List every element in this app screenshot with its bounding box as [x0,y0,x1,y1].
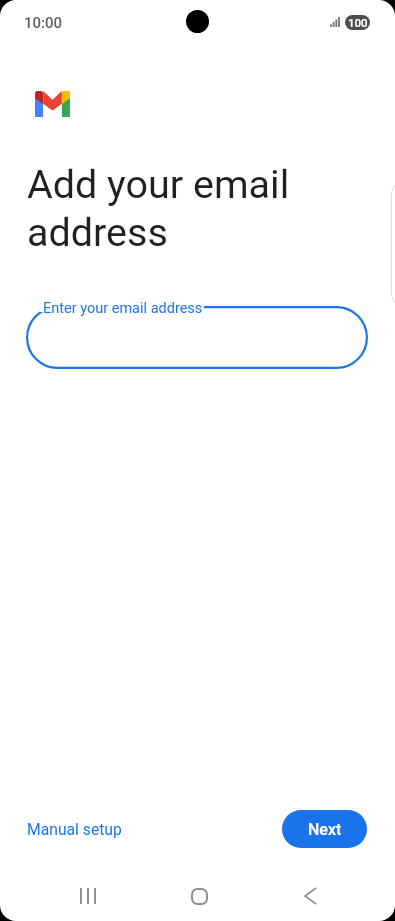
button[interactable]: Recents [67,875,109,917]
staticText: 100 [348,16,368,29]
button[interactable]: Next [282,810,367,848]
staticText: Enter your email address [43,300,203,317]
button[interactable]: Home [178,875,220,917]
staticText: Manual setup [27,820,122,838]
staticText: Next [308,820,342,839]
staticText: 10:00 [24,14,63,32]
button[interactable]: Back [289,875,331,917]
staticText: Add your email address [27,161,290,256]
button[interactable]: Manual setup [20,815,129,843]
button[interactable] [26,306,368,369]
